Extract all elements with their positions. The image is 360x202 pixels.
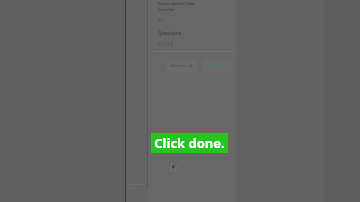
button[interactable]: Add rule — [202, 60, 232, 72]
staticText: here list — [158, 7, 176, 13]
staticText: 60 — [158, 17, 163, 23]
staticText: Remove all — [171, 63, 193, 69]
button[interactable]: Click done. — [151, 133, 228, 153]
staticText: Focus (prefix) link — [158, 1, 195, 7]
staticText: Questions — [158, 30, 182, 36]
staticText: 04:31:3 — [158, 41, 173, 47]
staticText: Click done. — [154, 134, 225, 152]
button[interactable]: Remove all — [167, 60, 197, 72]
staticText: Add rule — [211, 63, 228, 69]
other: Mouse pointer — [170, 163, 179, 172]
